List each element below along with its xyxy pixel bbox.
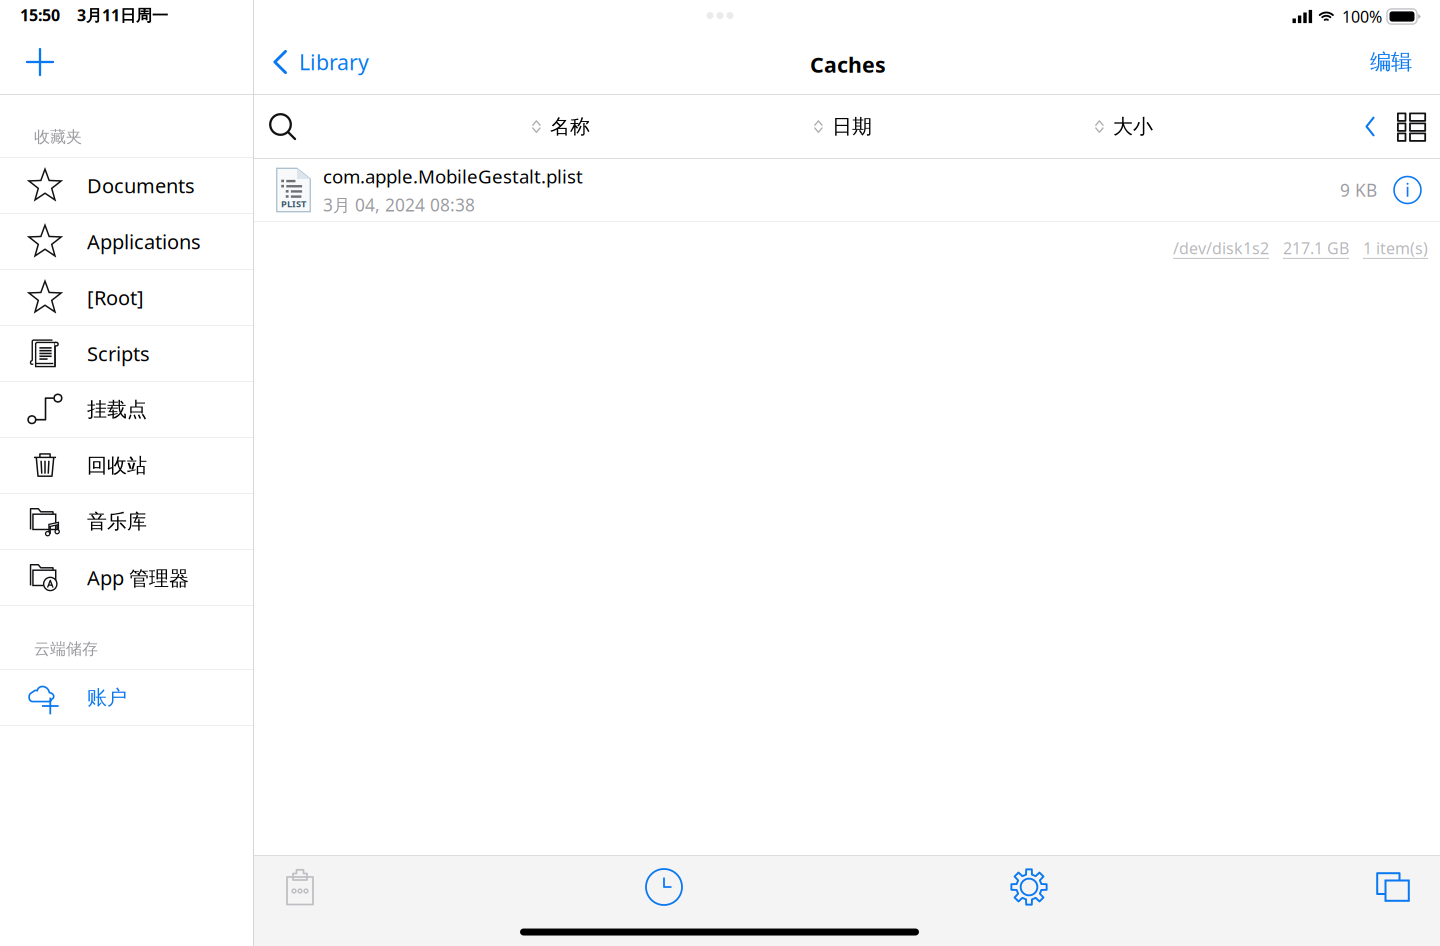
button[interactable]: Recents bbox=[632, 856, 696, 918]
staticText: 编辑 bbox=[1370, 49, 1412, 75]
button[interactable]: PLIST bbox=[254, 159, 1440, 222]
staticText: Documents bbox=[87, 172, 195, 199]
staticText: com.apple.MobileGestalt.plist bbox=[323, 163, 583, 189]
staticText: Applications bbox=[87, 228, 201, 255]
staticText: Library bbox=[299, 47, 369, 77]
staticText: 云端储存 bbox=[34, 639, 98, 659]
staticText: Scripts bbox=[87, 340, 150, 367]
staticText: 收藏夹 bbox=[34, 127, 82, 147]
button[interactable]: Collapse sidebar bbox=[1353, 100, 1387, 152]
staticText: 15:50 bbox=[20, 4, 60, 26]
button[interactable]: New bbox=[15, 37, 65, 87]
button[interactable]: App 管理器 bbox=[0, 550, 253, 606]
button[interactable]: 日期 bbox=[814, 95, 873, 158]
button[interactable]: 大小 bbox=[1095, 95, 1154, 158]
button[interactable]: Documents bbox=[0, 158, 253, 214]
staticText: 挂载点 bbox=[87, 397, 147, 422]
button[interactable]: Scripts bbox=[0, 326, 253, 382]
staticText: 账户 bbox=[87, 685, 127, 710]
button[interactable]: 挂载点 bbox=[0, 382, 253, 438]
staticText: 3月 04, 2024 08:38 bbox=[323, 193, 475, 216]
button[interactable]: Windows bbox=[1361, 856, 1425, 918]
staticText: 217.1 GB bbox=[1283, 237, 1349, 259]
staticText: 100% bbox=[1342, 6, 1382, 27]
button[interactable]: 名称 bbox=[532, 95, 591, 158]
button[interactable]: Settings bbox=[997, 856, 1061, 918]
button[interactable]: Library bbox=[254, 39, 371, 85]
button[interactable]: 回收站 bbox=[0, 438, 253, 494]
staticText: 大小 bbox=[1113, 114, 1153, 139]
staticText: 名称 bbox=[550, 114, 590, 139]
button[interactable]: 音乐库 bbox=[0, 494, 253, 550]
button[interactable]: View options bbox=[1387, 100, 1440, 152]
button[interactable]: Clipboard bbox=[268, 856, 332, 918]
staticText: App 管理器 bbox=[87, 564, 189, 591]
staticText: 日期 bbox=[832, 114, 872, 139]
staticText: 9 KB bbox=[1340, 178, 1377, 202]
button[interactable]: 账户 bbox=[0, 670, 253, 726]
button[interactable]: [Root] bbox=[0, 270, 253, 326]
staticText: 音乐库 bbox=[87, 509, 147, 534]
button[interactable]: Search bbox=[255, 99, 310, 154]
staticText: 3月11日周一 bbox=[77, 4, 168, 26]
button[interactable]: 编辑 bbox=[1356, 39, 1426, 85]
staticText: [Root] bbox=[87, 284, 144, 311]
staticText: 回收站 bbox=[87, 453, 147, 478]
staticText: /dev/disk1s2 bbox=[1173, 237, 1269, 259]
staticText: 1 item(s) bbox=[1363, 237, 1428, 259]
staticText: i bbox=[1405, 177, 1410, 202]
button[interactable]: Applications bbox=[0, 214, 253, 270]
staticText: PLIST bbox=[281, 197, 306, 210]
staticText: Caches bbox=[810, 50, 886, 79]
